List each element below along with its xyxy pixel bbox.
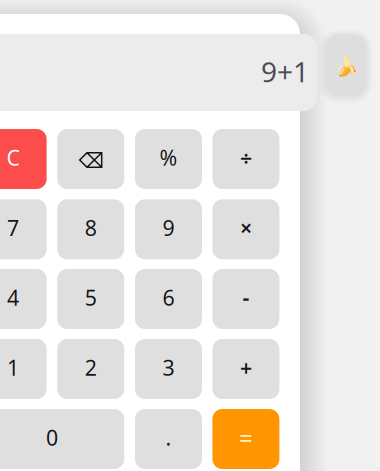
staticText: 7 xyxy=(7,214,19,242)
staticText: 9 xyxy=(162,214,174,242)
staticText: % xyxy=(159,143,177,172)
staticText: C xyxy=(7,143,20,172)
staticText: 4 xyxy=(7,283,19,312)
button[interactable] xyxy=(57,129,124,189)
button[interactable]: 8 xyxy=(57,199,124,259)
button[interactable]: × xyxy=(212,199,279,259)
button[interactable]: 5 xyxy=(57,269,124,329)
staticText: 6 xyxy=(162,283,174,312)
button[interactable]: 6 xyxy=(135,269,202,329)
staticText: ÷ xyxy=(240,143,252,172)
staticText: 0 xyxy=(46,423,58,452)
staticText: + xyxy=(240,353,252,382)
staticText: 🍌 xyxy=(334,56,357,77)
button[interactable]: = xyxy=(212,409,279,469)
button[interactable]: 1 xyxy=(0,339,47,399)
staticText: 9+1 xyxy=(261,53,309,90)
button[interactable]: . xyxy=(135,409,202,469)
button[interactable]: - xyxy=(212,269,279,329)
staticText: 1 xyxy=(7,353,19,382)
button[interactable]: ÷ xyxy=(212,129,279,189)
button[interactable]: 2 xyxy=(57,339,124,399)
staticText: 3 xyxy=(162,353,174,382)
button[interactable]: + xyxy=(212,339,279,399)
button[interactable]: C xyxy=(0,129,47,189)
button[interactable]: 4 xyxy=(0,269,47,329)
staticText: × xyxy=(240,214,252,242)
staticText: = xyxy=(239,422,253,453)
button[interactable]: Banana xyxy=(326,34,365,94)
staticText: . xyxy=(165,423,171,452)
button[interactable]: 7 xyxy=(0,199,47,259)
staticText: 2 xyxy=(85,353,97,382)
staticText: 5 xyxy=(85,283,97,312)
button[interactable]: % xyxy=(135,129,202,189)
staticText: - xyxy=(242,283,249,312)
button[interactable]: 9 xyxy=(135,199,202,259)
button[interactable]: 3 xyxy=(135,339,202,399)
button[interactable]: 0 xyxy=(0,409,124,469)
staticText: 8 xyxy=(85,214,97,242)
